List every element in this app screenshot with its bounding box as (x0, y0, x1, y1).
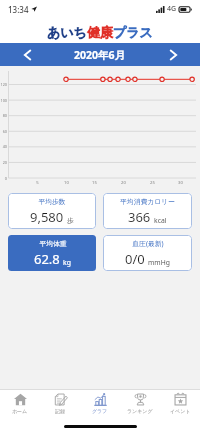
staticText: 平均歩数 (38, 197, 66, 206)
button[interactable]: 血圧(最新) (103, 235, 192, 271)
staticText: 4G (167, 4, 177, 14)
staticText: 15 (92, 180, 97, 186)
button[interactable]: 平均体重 (8, 235, 96, 271)
button[interactable]: 平均歩数 (8, 193, 96, 229)
staticText: プラス (113, 24, 153, 40)
staticText: 歩 (67, 216, 74, 225)
staticText: 100 (0, 98, 7, 103)
staticText: ホーム (12, 408, 28, 414)
button[interactable]: Previous month (14, 43, 40, 66)
staticText: 13:34 (8, 4, 29, 15)
staticText: 10 (64, 180, 69, 186)
staticText: 40 (2, 144, 7, 149)
staticText: 9,580 (30, 208, 64, 226)
staticText: 25 (150, 180, 155, 186)
staticText: 平均体重 (39, 239, 67, 248)
staticText: 記録 (55, 408, 65, 414)
staticText: 健康 (87, 24, 113, 40)
staticText: 0 (4, 176, 7, 181)
staticText: 80 (2, 113, 7, 118)
button[interactable]: 平均消費カロリー (103, 193, 192, 229)
staticText: あいち (47, 24, 87, 40)
staticText: 60 (2, 129, 7, 134)
staticText: 平均消費カロリー (120, 197, 175, 206)
button[interactable]: グラフ (80, 390, 120, 416)
staticText: 5 (36, 180, 39, 186)
staticText: 0/0 (125, 250, 145, 268)
staticText: 血圧(最新) (132, 239, 164, 248)
staticText: mmHg (148, 258, 170, 267)
staticText: イベント (170, 408, 191, 414)
button[interactable]: ホーム (0, 390, 40, 416)
staticText: 30 (178, 180, 183, 186)
staticText: 2020年6月 (74, 48, 126, 62)
staticText: 366 (128, 208, 151, 226)
staticText: kcal (154, 216, 167, 225)
button[interactable]: Next month (160, 43, 186, 66)
staticText: 120 (0, 82, 7, 87)
staticText: グラフ (92, 408, 108, 414)
staticText: kg (63, 258, 71, 267)
staticText: 20 (2, 160, 7, 165)
staticText: 20 (121, 180, 126, 186)
button[interactable]: イベント (160, 390, 200, 416)
button[interactable]: 記録 (40, 390, 80, 416)
staticText: ランキング (127, 408, 153, 414)
staticText: 62.8 (34, 250, 60, 268)
button[interactable]: ランキング (120, 390, 160, 416)
